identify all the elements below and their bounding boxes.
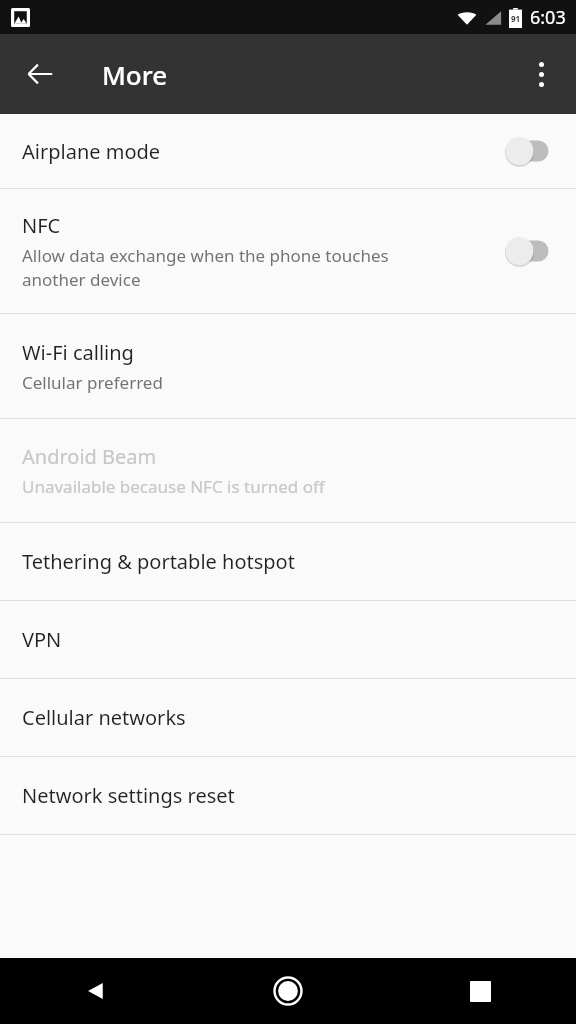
staticText: Network settings reset <box>22 782 235 809</box>
staticText: Wi-Fi calling <box>22 339 134 366</box>
button[interactable]: Back <box>0 958 192 1024</box>
button[interactable]: Tethering & portable hotspot <box>0 523 576 600</box>
staticText: Unavailable because NFC is turned off <box>22 475 325 498</box>
button[interactable]: Toggle <box>496 129 558 173</box>
staticText: Android Beam <box>22 443 157 470</box>
button[interactable]: Airplane mode <box>0 114 576 188</box>
staticText: VPN <box>22 626 62 653</box>
staticText: Cellular preferred <box>22 371 163 394</box>
button[interactable]: Recent apps <box>384 958 576 1024</box>
button[interactable]: Network settings reset <box>0 757 576 834</box>
staticText: NFC <box>22 212 61 239</box>
button[interactable]: NFC <box>0 189 576 313</box>
staticText: 91 <box>511 13 521 24</box>
staticText: Tethering & portable hotspot <box>22 548 295 575</box>
button[interactable]: VPN <box>0 601 576 678</box>
button[interactable]: More options <box>514 47 568 101</box>
staticText: Allow data exchange when the phone touch… <box>22 244 389 291</box>
staticText: More <box>102 57 168 92</box>
staticText: Cellular networks <box>22 704 186 731</box>
button[interactable]: Back <box>13 47 67 101</box>
button[interactable]: Toggle <box>496 229 558 273</box>
staticText: Airplane mode <box>22 138 161 165</box>
button[interactable]: Cellular networks <box>0 679 576 756</box>
button[interactable]: Wi-Fi calling <box>0 314 576 418</box>
staticText: 6:03 <box>530 5 566 30</box>
button[interactable]: Home <box>192 958 384 1024</box>
button[interactable]: Android Beam <box>0 419 576 522</box>
